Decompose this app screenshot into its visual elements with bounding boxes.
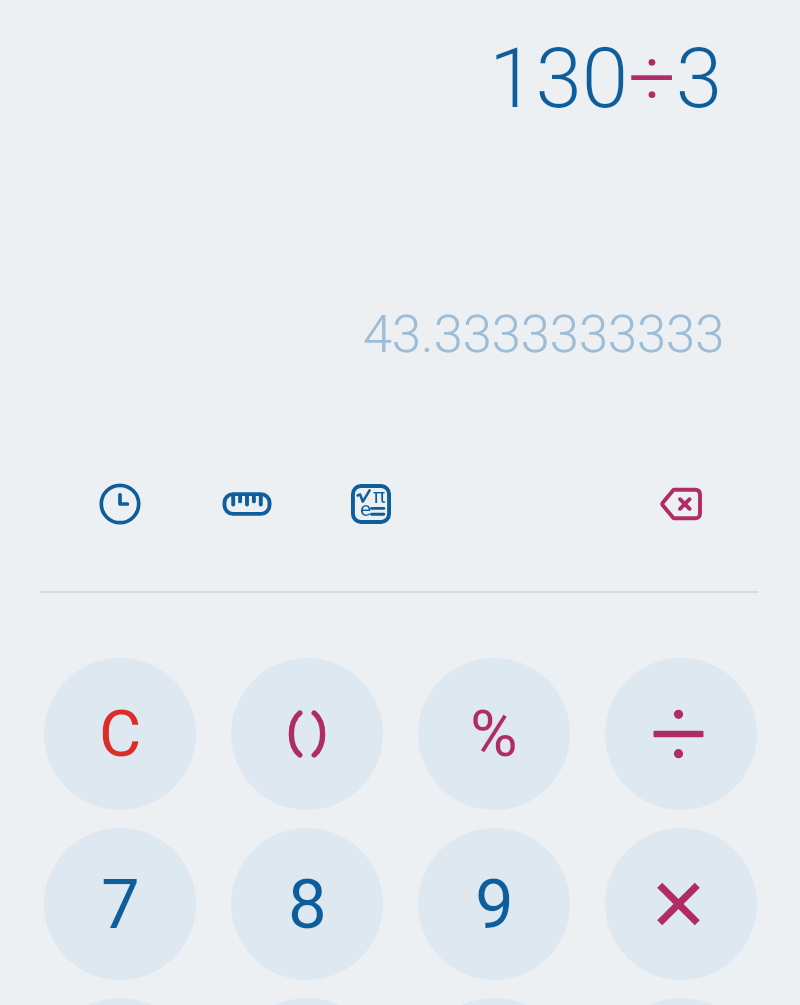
button[interactable]: Formulas: [337, 470, 405, 538]
button[interactable]: 5: [231, 998, 383, 1005]
button[interactable]: 7: [44, 828, 196, 980]
button[interactable]: Parentheses: [231, 658, 383, 810]
button[interactable]: 6: [418, 998, 570, 1005]
button[interactable]: Divide: [605, 658, 757, 810]
button[interactable]: %: [418, 658, 570, 810]
staticText: 43.3333333333: [363, 303, 725, 364]
button[interactable]: C: [44, 658, 196, 810]
staticText: 7: [101, 864, 140, 945]
button[interactable]: History: [86, 470, 154, 538]
button[interactable]: 4: [44, 998, 196, 1005]
staticText: 9: [475, 864, 514, 945]
staticText: 8: [288, 864, 327, 945]
button[interactable]: Minus: [605, 998, 757, 1005]
button[interactable]: Multiply: [605, 828, 757, 980]
button[interactable]: 8: [231, 828, 383, 980]
staticText: e: [360, 497, 372, 522]
staticText: 130÷3: [489, 29, 723, 127]
staticText: π: [373, 484, 386, 509]
staticText: %: [470, 696, 518, 772]
button[interactable]: 9: [418, 828, 570, 980]
button[interactable]: Backspace: [647, 470, 715, 538]
staticText: C: [99, 696, 142, 772]
button[interactable]: Unit converter: [213, 470, 281, 538]
